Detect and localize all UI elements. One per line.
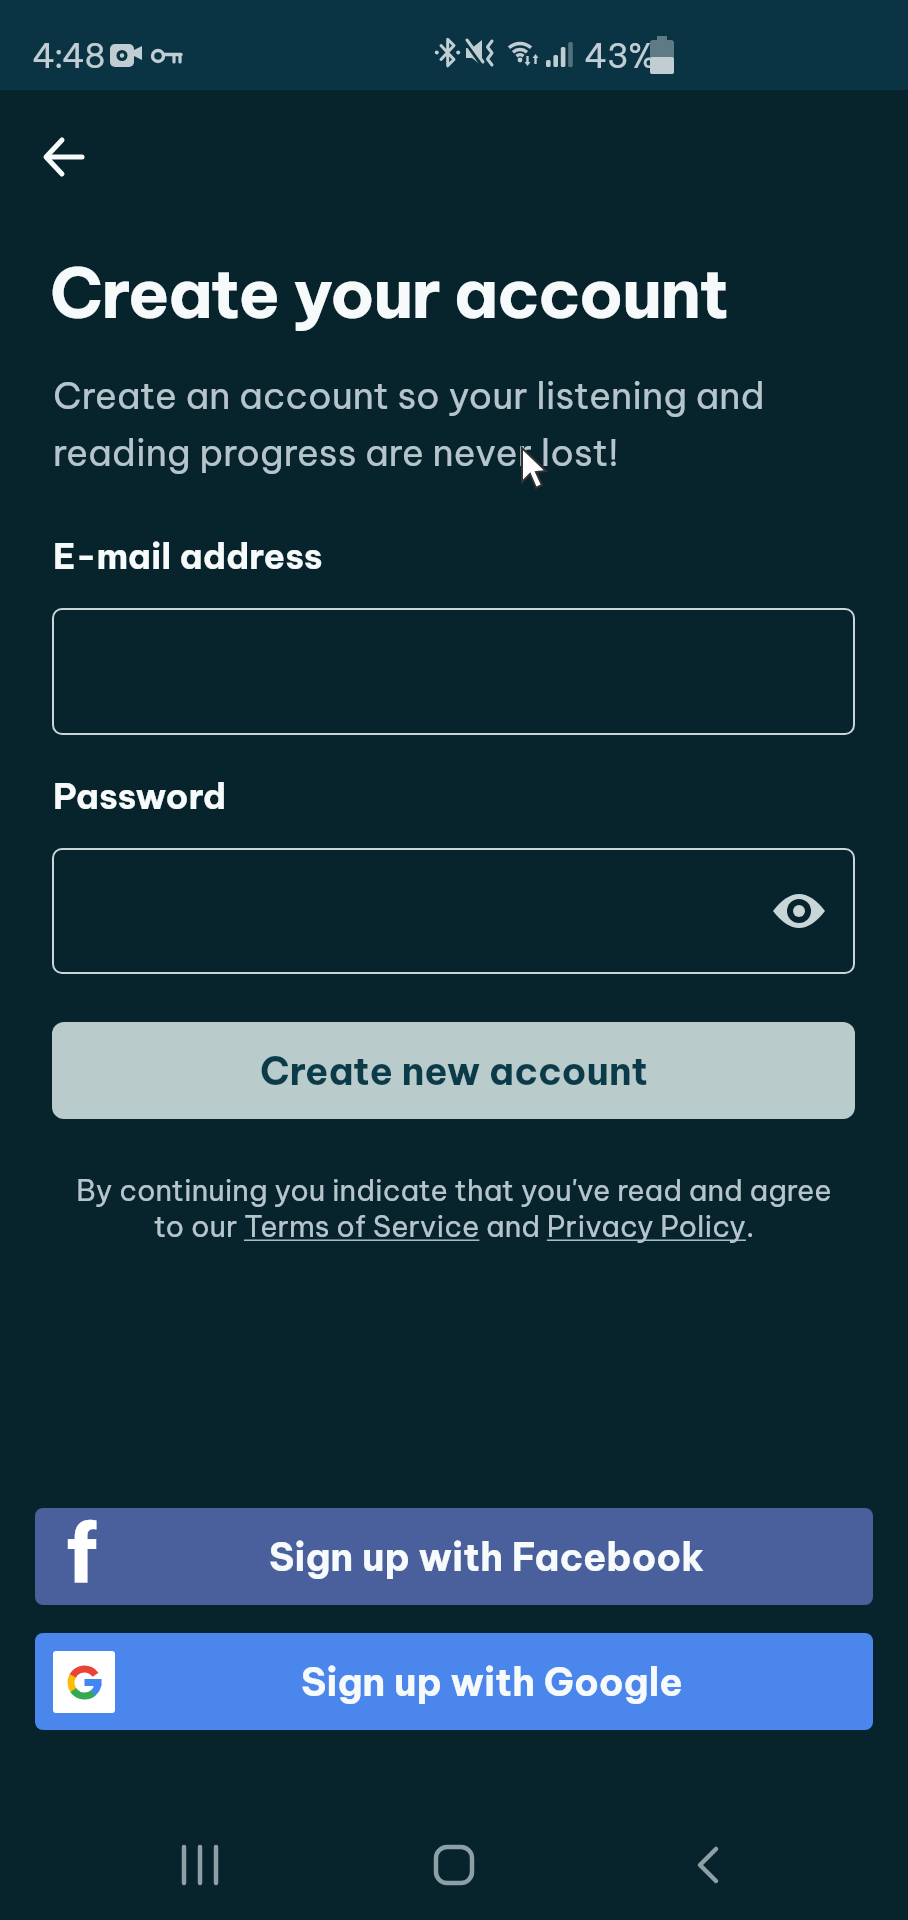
staticText: Create an account so your listening and … (53, 372, 765, 476)
button[interactable] (414, 1825, 494, 1905)
staticText: f (65, 1508, 99, 1597)
button[interactable]: Sign up with Facebook (35, 1508, 873, 1605)
staticText: Sign up with Facebook (269, 1533, 704, 1581)
button[interactable] (52, 608, 855, 735)
button[interactable]: Create new account (52, 1022, 855, 1119)
staticText: 43% (584, 35, 656, 77)
staticText: Sign up with Google (301, 1658, 683, 1706)
button[interactable] (668, 1825, 748, 1905)
button[interactable]: Sign up with Google (35, 1633, 873, 1730)
staticText: 4:48 (32, 35, 104, 77)
button[interactable]: By continuing you indicate that you've r… (0, 1172, 908, 1245)
button[interactable] (36, 130, 92, 186)
staticText: Create your account (50, 250, 728, 336)
staticText: E-mail address (53, 534, 323, 578)
staticText: Create new account (260, 1047, 648, 1095)
button[interactable] (52, 848, 855, 974)
staticText: Password (53, 774, 227, 818)
button[interactable] (160, 1825, 240, 1905)
